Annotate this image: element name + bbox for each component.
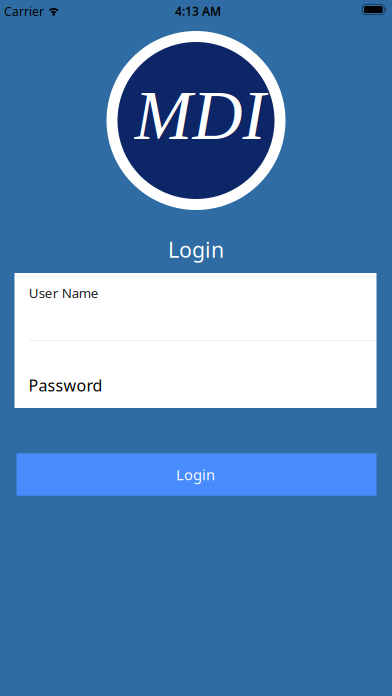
button[interactable]: User Name	[14, 273, 376, 340]
staticText: MDI	[134, 77, 265, 154]
staticText: Login	[176, 465, 215, 484]
staticText: Carrier	[4, 3, 44, 19]
staticText: Password	[28, 375, 102, 396]
staticText: Login	[168, 235, 224, 264]
button[interactable]: Login	[16, 453, 376, 496]
staticText: User Name	[29, 284, 99, 302]
button[interactable]: Password	[14, 341, 376, 408]
staticText: 4:13 AM	[175, 3, 221, 19]
